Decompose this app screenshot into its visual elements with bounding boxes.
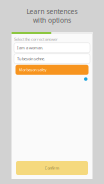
button[interactable]: Tu besoin sehne.	[14, 54, 90, 64]
staticText: Learn sentences	[26, 7, 77, 16]
staticText: Confirm	[44, 165, 59, 171]
staticText: with options	[33, 16, 71, 25]
staticText: Select the correct answer	[14, 36, 58, 42]
staticText: Morbason safey	[18, 67, 46, 72]
button[interactable]: Confirm	[16, 161, 88, 175]
staticText: Tu besoin sehne.	[17, 56, 45, 61]
button[interactable]: Morbason safey	[15, 65, 88, 75]
staticText: I am a woman.	[17, 45, 43, 50]
button[interactable]: I am a woman.	[14, 43, 90, 53]
